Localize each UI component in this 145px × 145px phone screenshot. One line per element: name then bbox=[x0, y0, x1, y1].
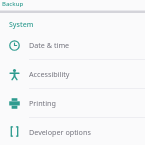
other: Date & time bbox=[9, 40, 20, 51]
other: Developer options bbox=[9, 126, 20, 137]
button[interactable]: Developer options bbox=[0, 118, 145, 145]
staticText: System bbox=[9, 20, 34, 30]
staticText: Backup bbox=[2, 0, 24, 8]
staticText: Developer options bbox=[29, 127, 91, 137]
button[interactable]: Backup bbox=[0, 0, 145, 10]
staticText: Date & time bbox=[29, 40, 70, 50]
staticText: Accessibility bbox=[29, 69, 70, 79]
button[interactable]: Printing bbox=[0, 89, 145, 117]
other: Printing bbox=[9, 98, 20, 109]
staticText: Printing bbox=[29, 98, 56, 108]
button[interactable]: Accessibility bbox=[0, 60, 145, 88]
other: Accessibility bbox=[9, 69, 20, 80]
button[interactable]: Date & time bbox=[0, 31, 145, 59]
